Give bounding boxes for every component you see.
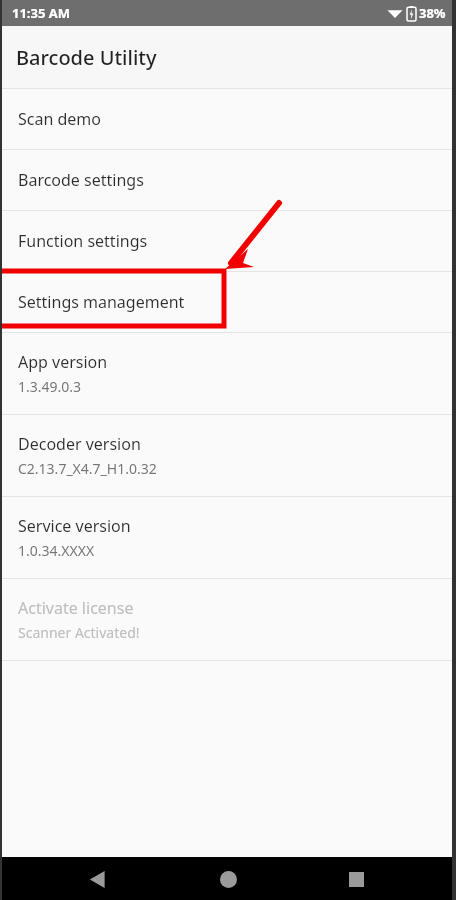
button[interactable]: Activate license bbox=[0, 579, 456, 660]
button[interactable]: Service version bbox=[0, 497, 456, 578]
staticText: Activate license bbox=[18, 597, 134, 619]
button[interactable]: Back bbox=[80, 862, 114, 896]
button[interactable]: Recent apps bbox=[339, 862, 373, 896]
staticText: Settings management bbox=[18, 291, 185, 313]
staticText: Scanner Activated! bbox=[18, 623, 140, 642]
button[interactable]: Function settings bbox=[0, 211, 456, 271]
button[interactable]: App version bbox=[0, 333, 456, 414]
staticText: Scan demo bbox=[18, 108, 101, 130]
button[interactable]: Barcode settings bbox=[0, 150, 456, 210]
staticText: 11:35 AM bbox=[12, 4, 71, 22]
staticText: Service version bbox=[18, 515, 131, 537]
staticText: 1.3.49.0.3 bbox=[18, 377, 82, 396]
staticText: Decoder version bbox=[18, 433, 141, 455]
staticText: Function settings bbox=[18, 230, 148, 252]
button[interactable]: Home bbox=[210, 861, 246, 897]
staticText: 1.0.34.XXXX bbox=[18, 541, 95, 560]
staticText: C2.13.7_X4.7_H1.0.32 bbox=[18, 459, 157, 478]
staticText: Barcode Utility bbox=[16, 44, 157, 71]
button[interactable]: Decoder version bbox=[0, 415, 456, 496]
staticText: Barcode settings bbox=[18, 169, 144, 191]
staticText: 38% bbox=[419, 4, 446, 22]
staticText: App version bbox=[18, 351, 108, 373]
button[interactable]: Scan demo bbox=[0, 89, 456, 149]
button[interactable]: Settings management bbox=[0, 272, 456, 332]
